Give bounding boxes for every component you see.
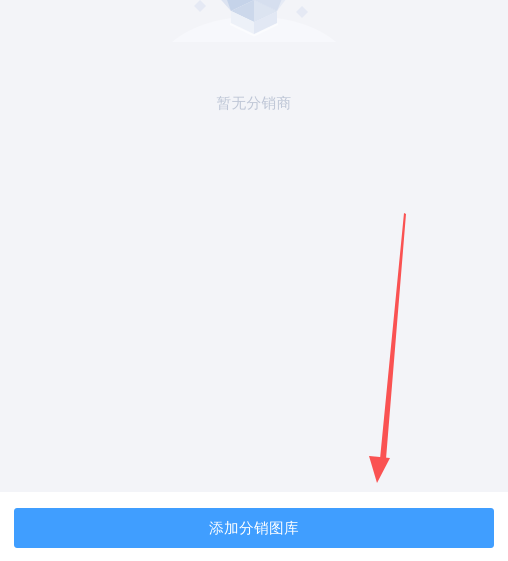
staticText: 添加分销图库: [209, 519, 299, 537]
button[interactable]: 添加分销图库: [14, 508, 494, 548]
staticText: 暂无分销商: [216, 94, 291, 112]
